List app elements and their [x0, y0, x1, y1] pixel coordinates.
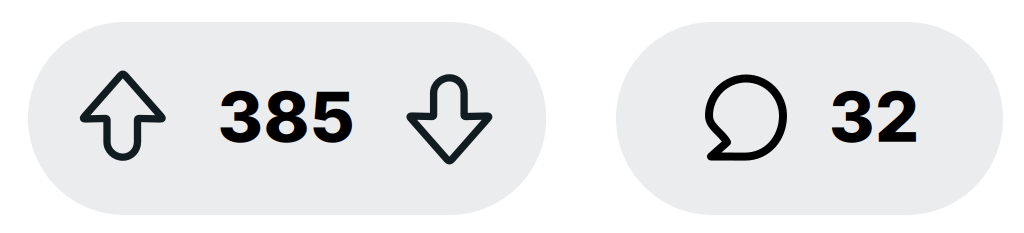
staticText: 385 [218, 75, 355, 158]
button[interactable]: 32 [616, 22, 1003, 215]
staticText: 32 [829, 75, 919, 158]
button[interactable]: 385 [28, 22, 546, 215]
